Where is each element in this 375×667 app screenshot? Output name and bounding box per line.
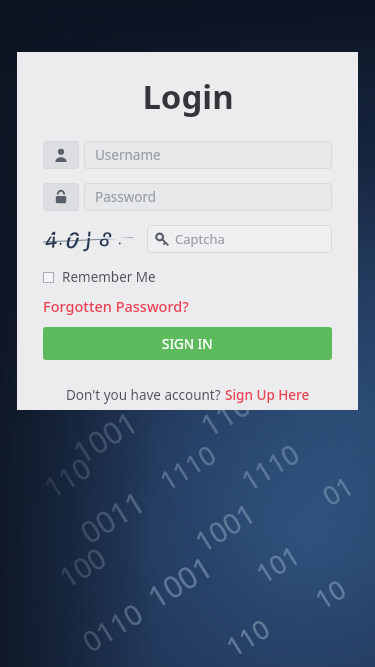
staticText: Captcha — [175, 230, 225, 248]
staticText: Forgotten Password? — [43, 296, 189, 316]
staticText: Username — [95, 146, 161, 164]
button[interactable]: Forgotten Password? — [43, 296, 189, 316]
staticText: Password — [95, 188, 157, 206]
staticText: Remember Me — [62, 268, 156, 286]
staticText: Don't you have account? — [66, 386, 225, 404]
button[interactable]: Captcha — [147, 225, 332, 253]
button[interactable]: Remember Me — [43, 267, 156, 287]
staticText: Login — [142, 74, 234, 119]
button[interactable]: SIGN IN — [43, 327, 332, 360]
button[interactable]: Username — [43, 141, 332, 169]
button[interactable]: Sign Up Here — [225, 386, 310, 404]
staticText: Sign Up Here — [225, 386, 310, 404]
staticText: SIGN IN — [162, 335, 213, 353]
button[interactable]: Password — [43, 183, 332, 211]
